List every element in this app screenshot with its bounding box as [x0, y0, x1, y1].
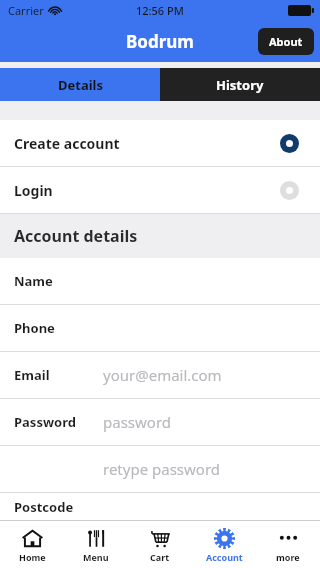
staticText: Login	[14, 181, 53, 200]
staticText: Postcode	[14, 498, 74, 516]
button[interactable]: About	[258, 28, 314, 55]
staticText: Name	[14, 272, 53, 290]
button[interactable]: Account	[192, 521, 256, 568]
staticText: Carrier	[8, 3, 44, 18]
staticText: Password	[14, 413, 76, 431]
button[interactable]: Email	[0, 352, 320, 398]
staticText: Phone	[14, 319, 55, 337]
button[interactable]: Phone	[0, 305, 320, 351]
button[interactable]: Name	[0, 258, 320, 304]
staticText: more	[276, 551, 300, 563]
staticText: Account details	[14, 225, 138, 247]
staticText: retype password	[103, 459, 221, 479]
staticText: Home	[19, 551, 46, 563]
button[interactable]: Home	[0, 521, 64, 568]
staticText: Bodrum	[126, 30, 194, 53]
button[interactable]: Postcode	[0, 493, 320, 520]
button[interactable]: Cart	[128, 521, 192, 568]
staticText: Menu	[83, 551, 109, 563]
staticText: your@email.com	[103, 365, 222, 385]
staticText: Cart	[150, 551, 170, 563]
button[interactable]: Login	[0, 167, 320, 213]
staticText: Account	[206, 551, 243, 563]
staticText: History	[216, 76, 264, 94]
staticText: password	[103, 412, 171, 432]
button[interactable]: Create account	[0, 120, 320, 166]
staticText: Email	[14, 366, 50, 384]
staticText: Create account	[14, 134, 120, 153]
button[interactable]: Menu	[64, 521, 128, 568]
button[interactable]: more	[256, 521, 320, 568]
staticText: Details	[58, 76, 103, 94]
staticText: 12:56 PM	[136, 3, 184, 18]
staticText: About	[269, 34, 303, 49]
button[interactable]: retype password	[0, 446, 320, 492]
button[interactable]: History	[160, 68, 320, 101]
button[interactable]: Details	[0, 68, 160, 101]
button[interactable]: Password	[0, 399, 320, 445]
